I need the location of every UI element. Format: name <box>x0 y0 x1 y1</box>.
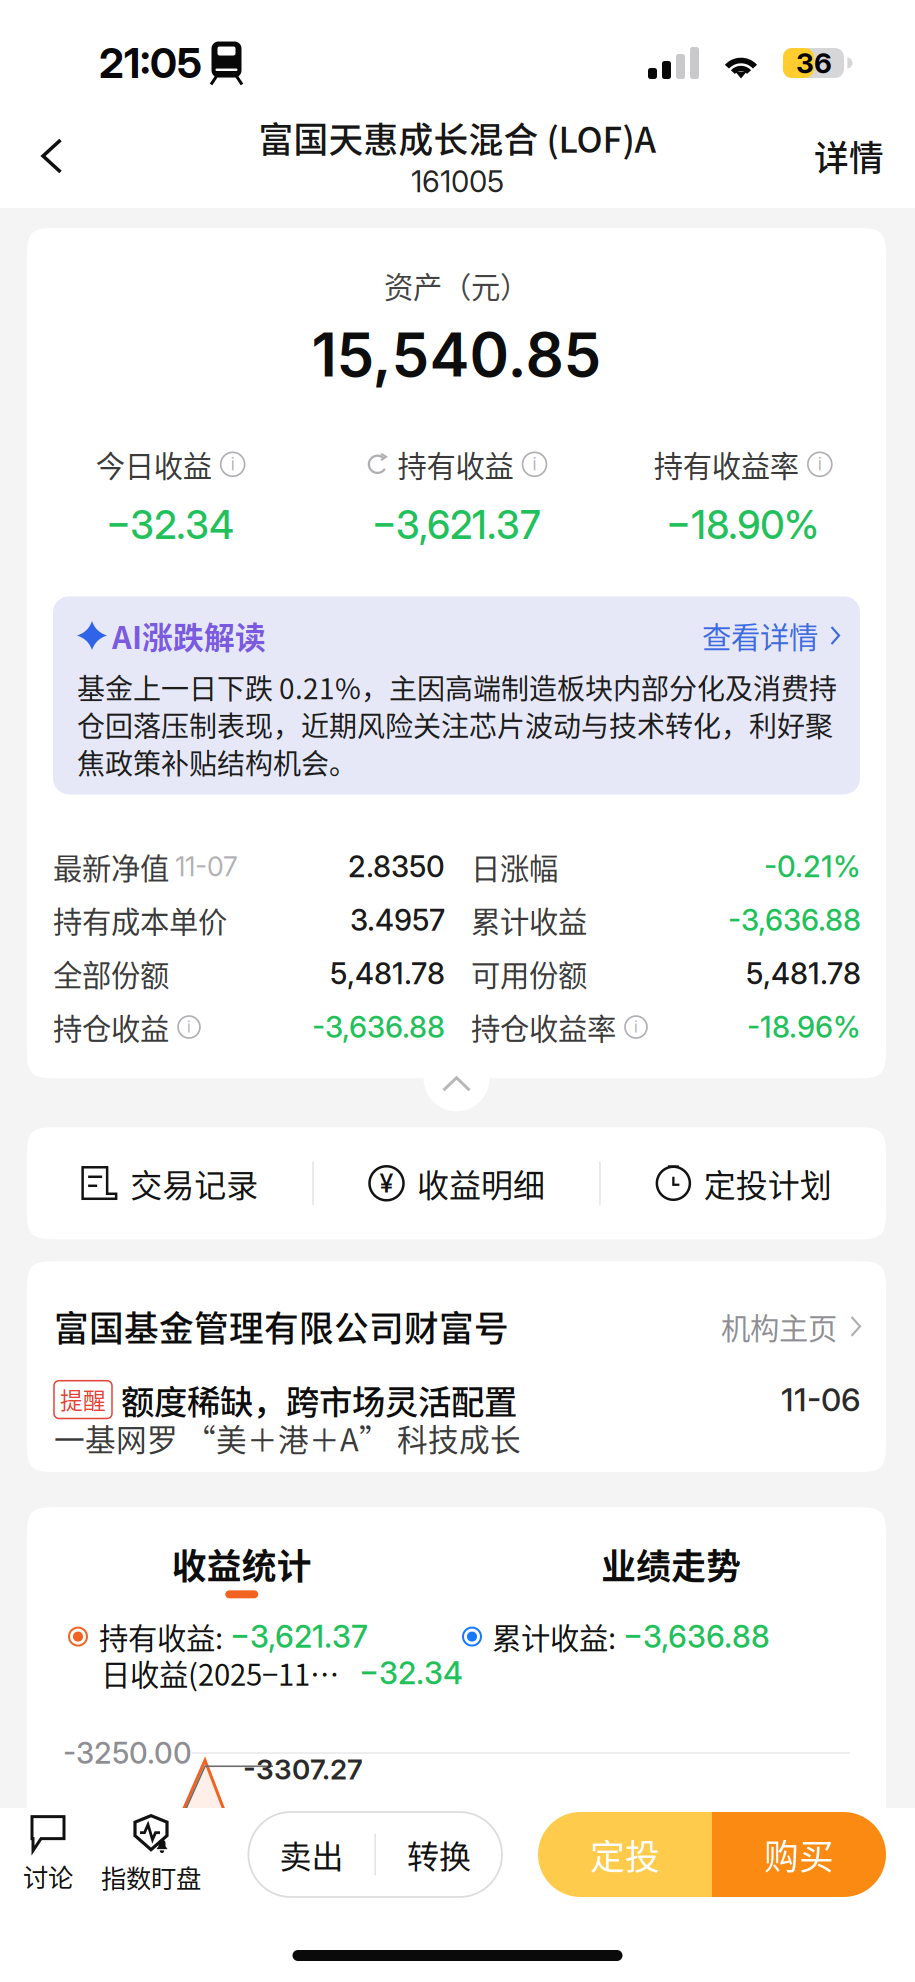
button[interactable]: 转换 <box>376 1812 502 1897</box>
staticText: −3,621.37 <box>230 1618 368 1655</box>
staticText: 额度稀缺，跨市场灵活配置 <box>121 1375 517 1424</box>
button[interactable]: 提醒 <box>54 1351 861 1472</box>
staticText: 日收益(2025−11−07): <box>101 1652 352 1694</box>
staticText: 36 <box>796 46 832 80</box>
staticText: 日涨幅 <box>471 845 558 888</box>
staticText: 持有成本单价 <box>53 899 227 941</box>
staticText: 持仓收益 <box>53 1006 169 1048</box>
staticText: 一基网罗 “美＋港＋A” 科技成长 <box>54 1416 521 1460</box>
button[interactable]: 讨论 <box>0 1815 96 1894</box>
staticText: i <box>818 454 822 474</box>
staticText: 今日收益 <box>96 443 212 486</box>
staticText: 161005 <box>411 164 504 199</box>
staticText: −3,621.37 <box>372 501 541 548</box>
staticText: 富国天惠成长混合 (LOF)A <box>258 113 656 163</box>
staticText: 15,540.85 <box>311 318 601 391</box>
staticText: 3.4957 <box>350 902 445 938</box>
staticText: 全部份额 <box>53 952 169 995</box>
staticText: 持仓收益率 <box>471 1006 616 1048</box>
button[interactable]: 富国基金管理有限公司财富号 <box>54 1261 861 1351</box>
staticText: 持有收益率 <box>654 443 799 486</box>
button[interactable]: 卖出 <box>248 1812 374 1897</box>
staticText: -0.21% <box>764 849 861 884</box>
staticText: 持有收益: <box>99 1615 223 1658</box>
staticText: i <box>231 454 235 474</box>
staticText: -3250.00 <box>63 1735 192 1771</box>
staticText: −32.34 <box>359 1654 463 1692</box>
button[interactable]: 返回 <box>0 106 104 206</box>
staticText: −18.90% <box>666 501 819 548</box>
staticText: 业绩走势 <box>601 1539 741 1589</box>
button[interactable]: 购买 <box>712 1812 886 1897</box>
staticText: i <box>532 454 536 474</box>
button[interactable]: 业绩走势 <box>456 1539 886 1598</box>
staticText: 讨论 <box>23 1858 73 1894</box>
button[interactable]: 收益统计 <box>27 1539 456 1598</box>
button[interactable]: ¥ <box>314 1127 599 1239</box>
staticText: -3,636.88 <box>312 1009 445 1045</box>
staticText: −3,636.88 <box>623 1618 770 1655</box>
staticText: 收益明细 <box>417 1160 545 1206</box>
button[interactable]: 收起 <box>423 1045 489 1111</box>
staticText: 基金上一日下跌 0.21%，主因高端制造板块内部分化及消费持仓回落压制表现，近期… <box>77 667 837 782</box>
button[interactable]: 定投 <box>538 1812 712 1897</box>
staticText: 资产（元） <box>384 264 529 306</box>
staticText: 11-06 <box>781 1380 861 1419</box>
staticText: -18.96% <box>747 1009 861 1045</box>
staticText: 卖出 <box>279 1831 343 1878</box>
staticText: 累计收益 <box>471 899 587 941</box>
button[interactable]: 交易记录 <box>27 1127 312 1239</box>
button[interactable]: 详情 <box>783 106 915 206</box>
staticText: 累计收益: <box>492 1615 616 1658</box>
staticText: 持有收益 <box>397 443 513 486</box>
staticText: 机构主页 <box>721 1305 837 1348</box>
staticText: 21:05 <box>99 38 202 88</box>
staticText: 富国基金管理有限公司财富号 <box>54 1301 509 1351</box>
staticText: AI涨跌解读 <box>112 613 266 658</box>
button[interactable]: 指数盯盘 <box>96 1814 206 1895</box>
staticText: 定投 <box>590 1829 660 1880</box>
staticText: 交易记录 <box>130 1160 258 1206</box>
staticText: i <box>187 1018 191 1036</box>
staticText: -3307.27 <box>243 1752 363 1786</box>
staticText: ¥ <box>379 1168 393 1199</box>
staticText: -3,636.88 <box>728 902 861 938</box>
button[interactable]: 定投计划 <box>601 1127 886 1239</box>
staticText: 收益统计 <box>172 1539 312 1589</box>
button[interactable]: 查看详情 <box>702 614 840 657</box>
staticText: 定投计划 <box>704 1160 832 1206</box>
staticText: 最新净值 <box>53 845 169 888</box>
staticText: 5,481.78 <box>746 956 861 991</box>
staticText: 查看详情 <box>702 614 818 657</box>
staticText: 2.8350 <box>348 849 445 884</box>
staticText: 详情 <box>814 131 884 181</box>
staticText: 购买 <box>764 1829 834 1880</box>
staticText: i <box>634 1018 638 1036</box>
staticText: 5,481.78 <box>330 956 445 991</box>
staticText: 11-07 <box>175 850 238 883</box>
staticText: −32.34 <box>106 501 234 548</box>
staticText: 转换 <box>407 1831 471 1878</box>
staticText: 指数盯盘 <box>101 1859 201 1895</box>
staticText: 可用份额 <box>471 952 587 995</box>
staticText: 提醒 <box>60 1383 106 1415</box>
